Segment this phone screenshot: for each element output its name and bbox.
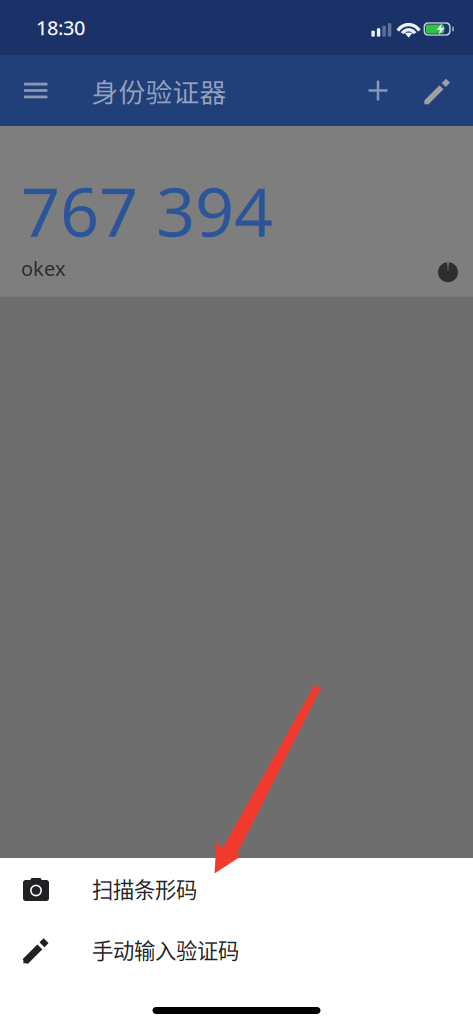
button[interactable]: 身份验证器 <box>71 64 226 116</box>
staticText: 身份验证器 <box>91 71 226 110</box>
button[interactable]: 扫描条形码 <box>0 858 473 919</box>
staticText: 手动输入验证码 <box>92 934 239 965</box>
button[interactable]: 手动输入验证码 <box>0 919 473 980</box>
staticText: okex <box>21 255 66 282</box>
button[interactable]: Edit <box>424 64 449 116</box>
staticText: 18:30 <box>36 14 85 41</box>
button[interactable]: Add <box>358 64 398 116</box>
staticText: 767 394 <box>21 164 273 257</box>
button[interactable]: Menu <box>0 64 71 116</box>
staticText: 扫描条形码 <box>92 873 197 904</box>
